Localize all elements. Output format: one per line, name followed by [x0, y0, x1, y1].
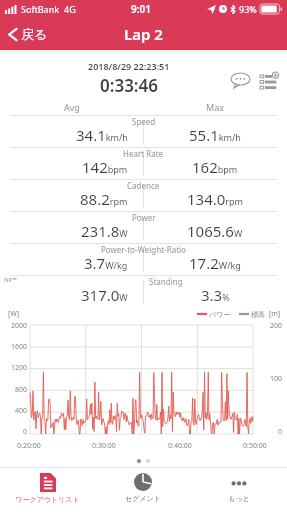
button[interactable]: NP™ — [0, 275, 287, 307]
staticText: 0:40:00 — [168, 441, 192, 451]
staticText: Max — [206, 101, 224, 113]
staticText: 0:20:00 — [17, 441, 41, 451]
staticText: 162bpm — [192, 157, 238, 177]
staticText: 0:50:00 — [243, 441, 267, 451]
staticText: 0:30:00 — [92, 441, 116, 451]
staticText: 317.0W — [81, 285, 128, 305]
staticText: Heart Rate — [123, 148, 164, 159]
button[interactable]: Cadence — [0, 179, 287, 211]
staticText: Avg — [64, 101, 80, 113]
staticText: 100 — [270, 374, 283, 384]
button[interactable]: セグメント — [95, 468, 191, 512]
staticText: Cadence — [127, 180, 160, 191]
staticText: 1065.6W — [187, 221, 243, 241]
staticText: 0 — [23, 427, 28, 437]
staticText: 800 — [15, 385, 28, 395]
staticText: 戻る — [21, 26, 48, 42]
button[interactable]: Power — [0, 211, 287, 243]
staticText: 200 — [270, 321, 283, 331]
staticText: パワー — [209, 310, 231, 319]
staticText: 231.8W — [81, 221, 128, 241]
staticText: 93% — [239, 3, 257, 15]
staticText: 1600 — [11, 342, 28, 352]
button[interactable]: Heart Rate — [0, 147, 287, 179]
staticText: NP™ — [4, 276, 17, 284]
button[interactable]: Speed — [0, 115, 287, 147]
staticText: 1200 — [11, 363, 28, 373]
button[interactable]: Comments — [228, 68, 252, 92]
staticText: [m] — [269, 309, 281, 319]
staticText: 9:01 — [131, 2, 151, 16]
staticText: Lap 2 — [124, 24, 163, 44]
staticText: 134.0rpm — [187, 189, 244, 209]
staticText: 0:33:46 — [100, 74, 159, 97]
staticText: 4G — [64, 3, 76, 15]
staticText: [W] — [8, 309, 20, 319]
staticText: 2000 — [11, 321, 28, 331]
staticText: 88.2rpm — [80, 189, 128, 209]
staticText: 400 — [15, 406, 28, 416]
staticText: セグメント — [125, 494, 161, 503]
staticText: Power-to-Weight-Ratio — [101, 244, 186, 255]
button[interactable]: もっと — [191, 468, 287, 512]
staticText: ワークアウトリスト — [15, 495, 80, 504]
staticText: 55.1km/h — [189, 125, 241, 145]
staticText: もっと — [228, 494, 250, 503]
staticText: 3.7W/kg — [84, 253, 128, 273]
staticText: 17.2W/kg — [189, 253, 241, 273]
button[interactable]: Power-to-Weight-Ratio — [0, 243, 287, 275]
staticText: Standing — [149, 276, 183, 287]
button[interactable]: Add to list — [257, 68, 281, 92]
staticText: Power — [132, 212, 156, 223]
staticText: 142bpm — [82, 157, 128, 177]
staticText: Speed — [132, 116, 156, 127]
button[interactable]: ワークアウトリスト — [0, 468, 95, 512]
staticText: 3.3% — [201, 285, 230, 305]
button[interactable]: 戻る — [5, 22, 51, 46]
staticText: 34.1km/h — [76, 125, 128, 145]
staticText: 0 — [278, 427, 283, 437]
staticText: 標高 — [251, 310, 265, 319]
staticText: 2018/8/29 22:23:51 — [88, 60, 170, 72]
staticText: SoftBank — [21, 3, 59, 15]
